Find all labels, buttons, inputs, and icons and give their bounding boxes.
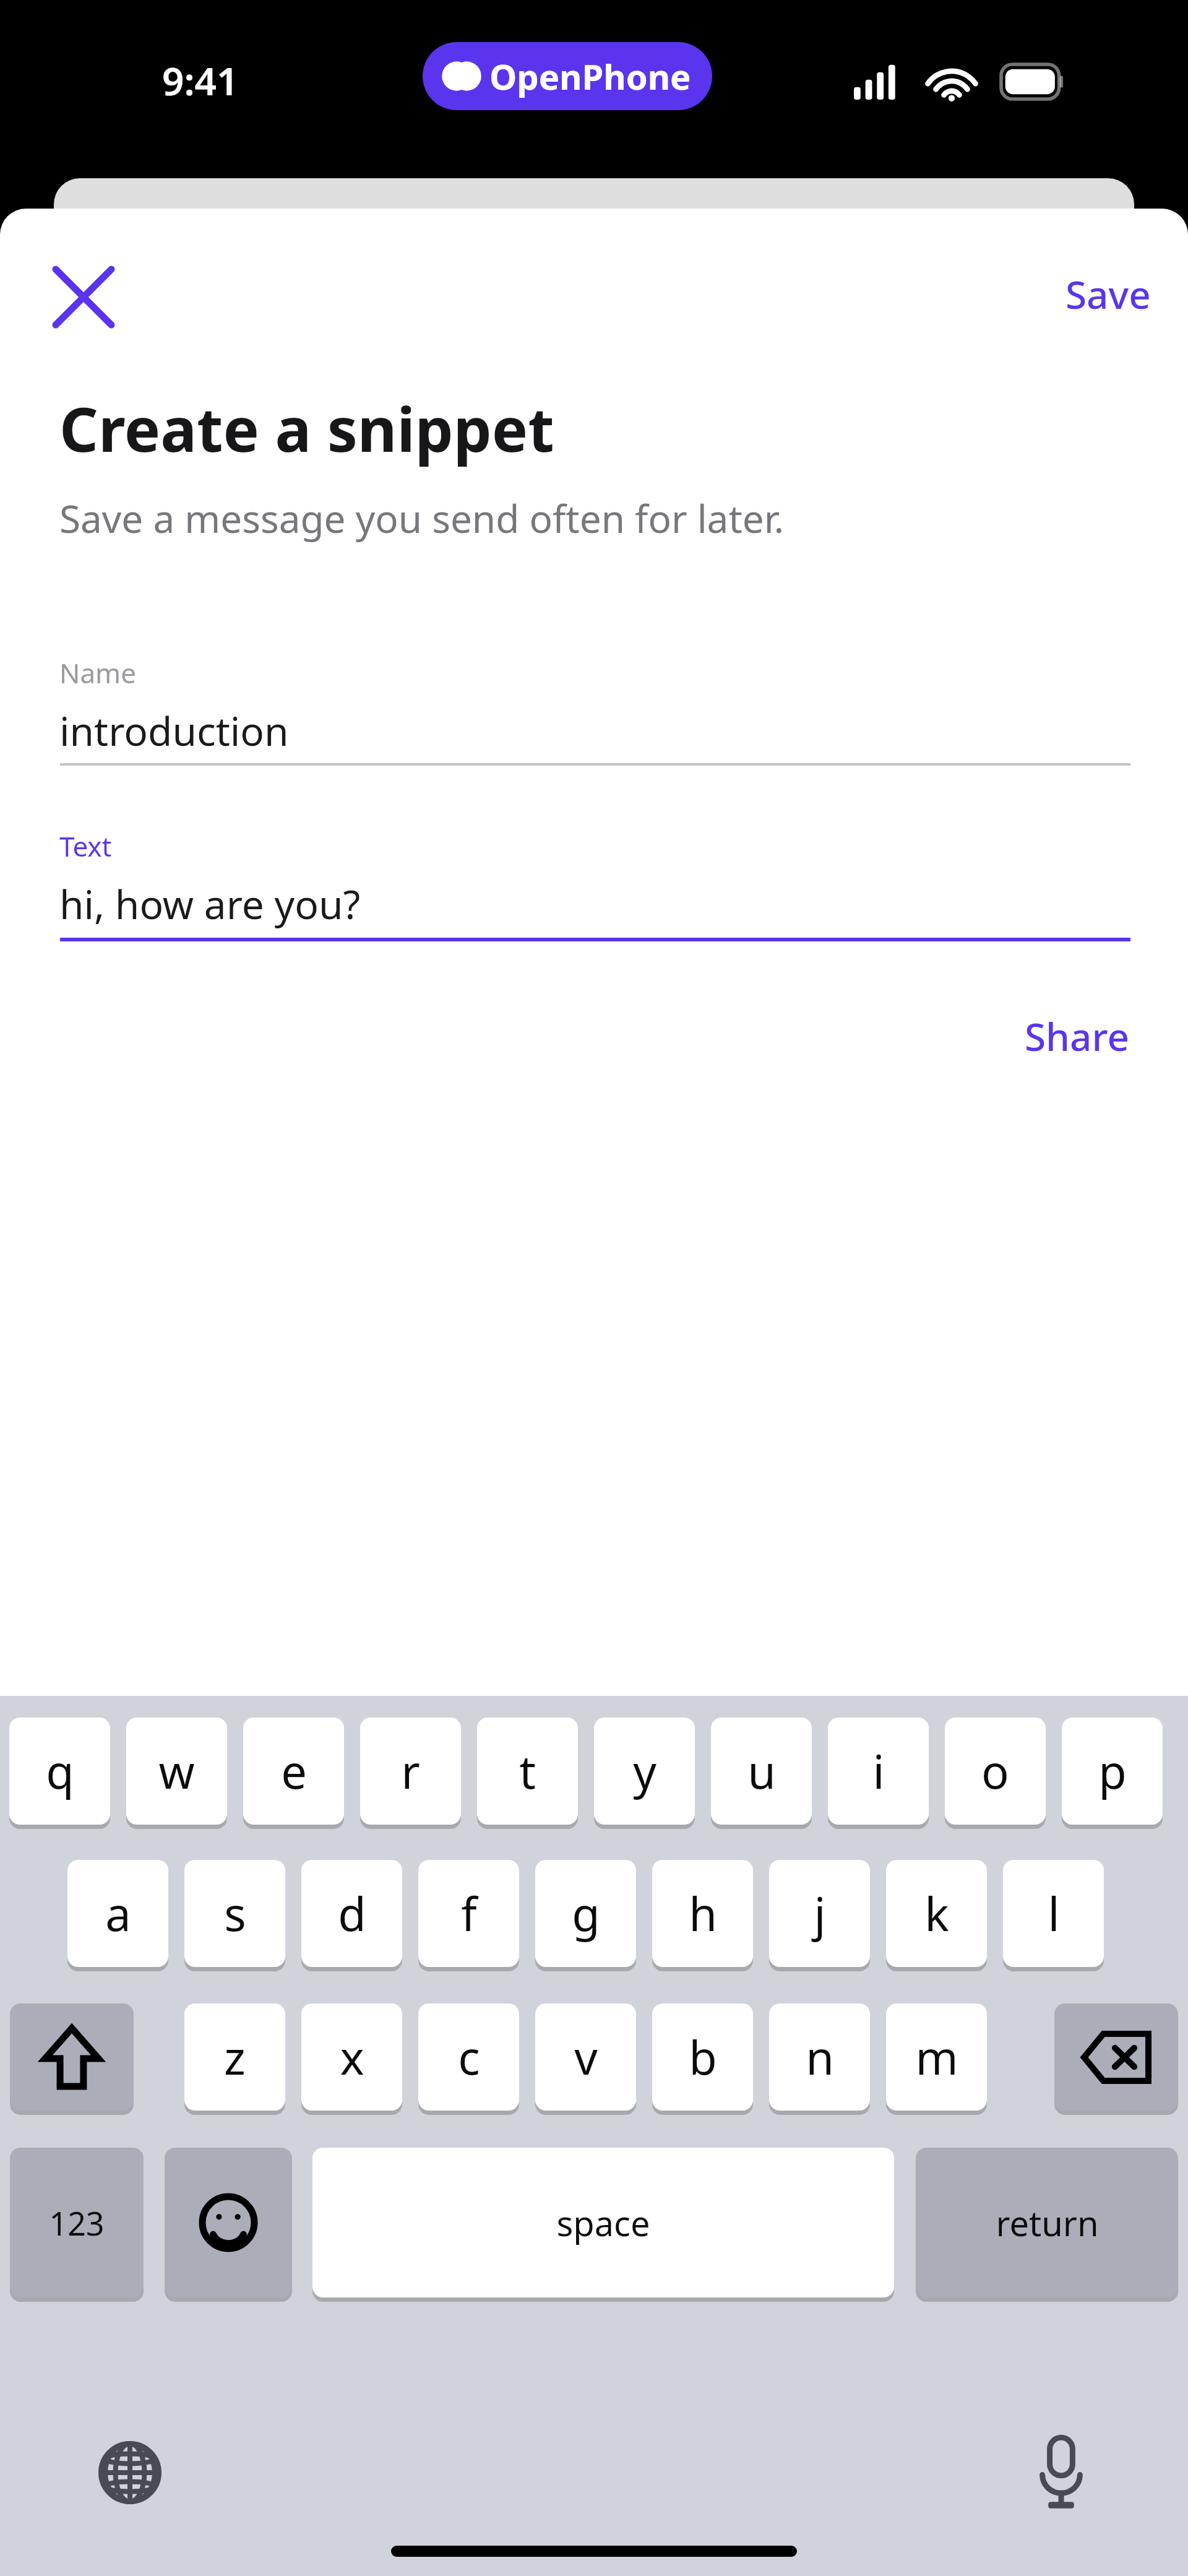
staticText: h bbox=[689, 1882, 717, 1945]
button[interactable]: m bbox=[886, 2003, 987, 2111]
button[interactable]: Save bbox=[1002, 257, 1151, 331]
button[interactable]: Change keyboard language bbox=[80, 2423, 179, 2522]
button[interactable]: f bbox=[418, 1860, 519, 1967]
staticText: g bbox=[572, 1882, 600, 1945]
staticText: w bbox=[158, 1740, 195, 1802]
staticText: e bbox=[281, 1740, 307, 1802]
staticText: 9:41 bbox=[162, 54, 239, 106]
staticText: hi, how are you? bbox=[59, 877, 361, 931]
button[interactable]: k bbox=[886, 1860, 987, 1967]
button[interactable]: Share bbox=[965, 1002, 1130, 1070]
staticText: y bbox=[633, 1740, 656, 1802]
staticText: q bbox=[46, 1740, 74, 1802]
staticText: Save bbox=[1065, 268, 1151, 320]
staticText: return bbox=[996, 2199, 1099, 2246]
button[interactable]: 123 bbox=[10, 2148, 144, 2297]
staticText: a bbox=[105, 1882, 131, 1945]
button[interactable]: l bbox=[1003, 1860, 1104, 1967]
button[interactable]: y bbox=[594, 1718, 695, 1825]
button[interactable]: e bbox=[243, 1718, 344, 1825]
staticText: x bbox=[340, 2026, 364, 2088]
button[interactable]: o bbox=[945, 1718, 1046, 1825]
button[interactable]: w bbox=[126, 1718, 227, 1825]
button[interactable]: introduction bbox=[59, 696, 1130, 764]
staticText: t bbox=[519, 1740, 536, 1802]
button[interactable]: z bbox=[184, 2003, 285, 2111]
button[interactable]: u bbox=[711, 1718, 812, 1825]
staticText: l bbox=[1048, 1882, 1060, 1945]
staticText: Share bbox=[1025, 1010, 1130, 1062]
button[interactable]: n bbox=[769, 2003, 870, 2111]
staticText: d bbox=[338, 1882, 366, 1945]
button[interactable]: t bbox=[477, 1718, 578, 1825]
staticText: OpenPhone bbox=[489, 53, 691, 100]
staticText: space bbox=[556, 2199, 650, 2246]
staticText: introduction bbox=[59, 704, 289, 758]
staticText: c bbox=[458, 2026, 480, 2088]
staticText: m bbox=[915, 2026, 958, 2088]
staticText: k bbox=[924, 1882, 949, 1945]
staticText: f bbox=[461, 1882, 477, 1945]
staticText: b bbox=[689, 2026, 717, 2088]
staticText: j bbox=[814, 1882, 826, 1945]
button[interactable]: g bbox=[535, 1860, 636, 1967]
button[interactable]: v bbox=[535, 2003, 636, 2111]
button[interactable]: r bbox=[360, 1718, 461, 1825]
staticText: r bbox=[401, 1740, 420, 1802]
staticText: Save a message you send often for later. bbox=[59, 492, 785, 544]
staticText: n bbox=[806, 2026, 834, 2088]
button[interactable]: i bbox=[828, 1718, 929, 1825]
staticText: 123 bbox=[49, 2201, 105, 2245]
staticText: Name bbox=[59, 654, 137, 691]
staticText: s bbox=[224, 1882, 246, 1945]
staticText: v bbox=[574, 2026, 598, 2088]
staticText: Create a snippet bbox=[59, 387, 554, 469]
button[interactable]: s bbox=[184, 1860, 285, 1967]
button[interactable]: Backspace bbox=[1054, 2003, 1178, 2111]
button[interactable]: return bbox=[916, 2148, 1178, 2297]
staticText: p bbox=[1098, 1740, 1127, 1802]
button[interactable]: x bbox=[301, 2003, 402, 2111]
staticText: z bbox=[224, 2026, 246, 2088]
staticText: u bbox=[747, 1740, 776, 1802]
button[interactable]: h bbox=[652, 1860, 753, 1967]
staticText: o bbox=[981, 1740, 1009, 1802]
button[interactable]: b bbox=[652, 2003, 753, 2111]
staticText: i bbox=[872, 1740, 885, 1802]
button[interactable]: q bbox=[9, 1718, 110, 1825]
button[interactable]: c bbox=[418, 2003, 519, 2111]
button[interactable]: Dictation bbox=[1012, 2423, 1111, 2522]
button[interactable]: a bbox=[67, 1860, 168, 1967]
button[interactable]: j bbox=[769, 1860, 870, 1967]
button[interactable]: hi, how are you? bbox=[59, 870, 1130, 938]
button[interactable]: p bbox=[1062, 1718, 1163, 1825]
button[interactable]: Emoji keyboard bbox=[165, 2148, 292, 2297]
staticText: Text bbox=[59, 828, 112, 865]
button[interactable]: d bbox=[301, 1860, 402, 1967]
button[interactable]: space bbox=[312, 2148, 894, 2297]
button[interactable] bbox=[10, 2003, 134, 2111]
button[interactable]: Close bbox=[38, 252, 129, 342]
